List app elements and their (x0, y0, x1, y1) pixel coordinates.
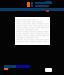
button[interactable]: Logo (4, 65, 9, 69)
button[interactable]: Button (45, 68, 52, 72)
button[interactable]: App header (27, 1, 52, 7)
button[interactable]: Document (15, 17, 50, 45)
button[interactable]: Toolbar (0, 8, 64, 11)
